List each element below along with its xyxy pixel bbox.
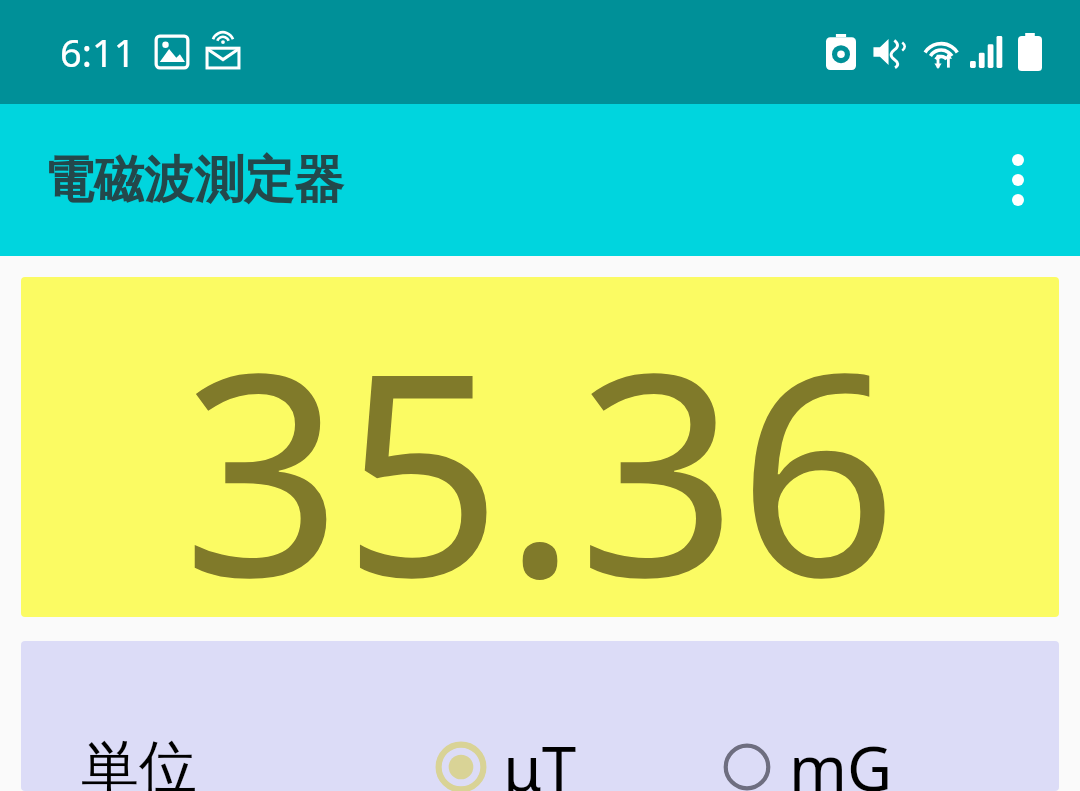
staticText: mG: [789, 725, 893, 791]
staticText: 単位: [81, 731, 197, 791]
staticText: 6:11: [60, 26, 136, 78]
staticText: μT: [503, 725, 577, 791]
button[interactable]: 35.36: [21, 277, 1059, 617]
button[interactable]: μT: [429, 719, 581, 791]
button[interactable]: More options: [978, 140, 1058, 220]
staticText: 35.36: [182, 277, 898, 617]
button[interactable]: mG: [715, 719, 897, 791]
staticText: 電磁波測定器: [44, 149, 344, 212]
